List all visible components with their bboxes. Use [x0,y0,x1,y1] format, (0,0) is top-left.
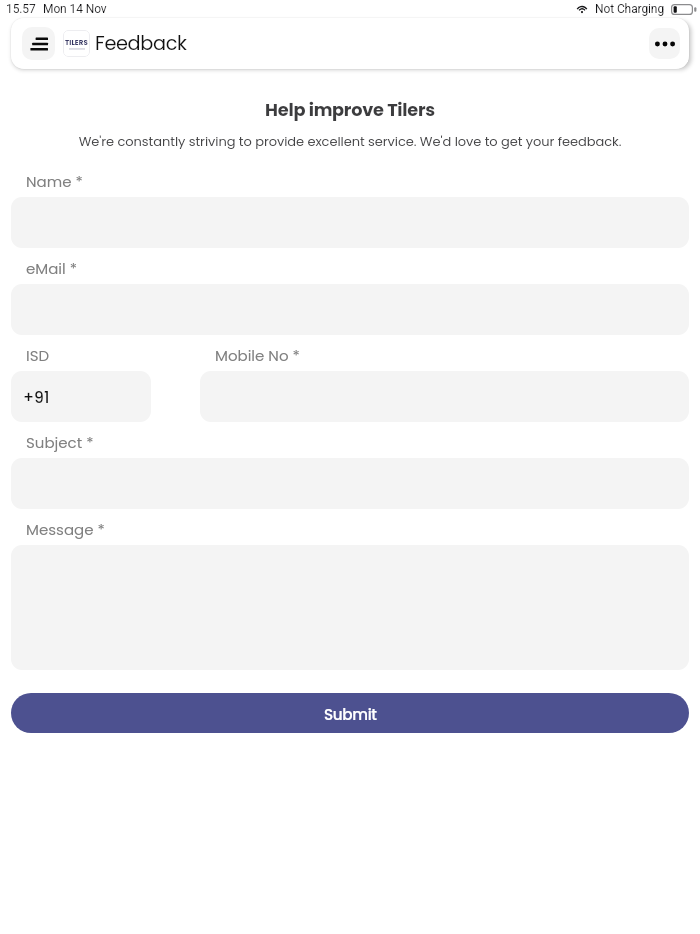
staticText: Not Charging [595,2,665,16]
staticText: Message * [26,519,105,540]
staticText: Feedback [95,30,187,57]
staticText: eMail * [26,258,78,279]
staticText: Submit [324,704,377,725]
staticText: Name * [26,171,83,192]
staticText: ISD [26,345,50,366]
button[interactable]: Menu [22,27,55,60]
staticText: We're constantly striving to provide exc… [11,132,689,150]
staticText: Help improve Tilers [11,97,689,122]
staticText: Subject * [26,432,94,453]
staticText: +91 [23,387,50,409]
staticText: TILERS [65,38,88,48]
button[interactable]: +91 [11,371,151,422]
staticText: Mobile No * [215,345,300,366]
button[interactable]: Submit [11,693,689,733]
button[interactable]: More options [649,28,680,59]
staticText: 15.57 [6,2,36,16]
staticText: Mon 14 Nov [43,2,107,16]
